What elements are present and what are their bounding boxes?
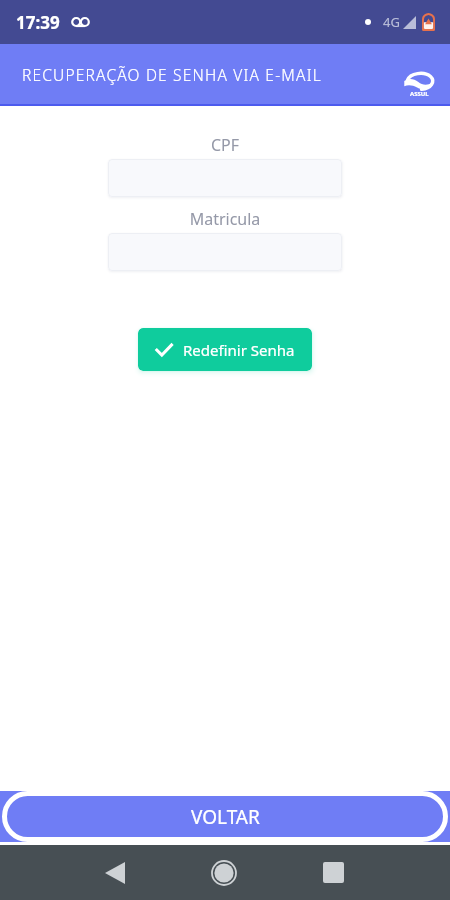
staticText: ASSUL — [410, 90, 429, 98]
staticText: 4G — [383, 13, 400, 31]
staticText: VOLTAR — [191, 804, 260, 830]
staticText: Redefinir Senha — [183, 340, 295, 360]
staticText: Matricula — [0, 208, 450, 230]
button[interactable]: Recent apps — [305, 845, 361, 900]
button[interactable]: Redefinir Senha — [138, 328, 312, 371]
button[interactable]: Back — [87, 845, 143, 900]
staticText: 17:39 — [16, 11, 60, 34]
staticText: RECUPERAÇÃO DE SENHA VIA E-MAIL — [22, 64, 322, 85]
button[interactable]: Assul logo — [400, 70, 438, 96]
button[interactable]: VOLTAR — [0, 791, 450, 842]
button[interactable]: Home — [196, 845, 252, 900]
staticText: CPF — [0, 134, 450, 156]
